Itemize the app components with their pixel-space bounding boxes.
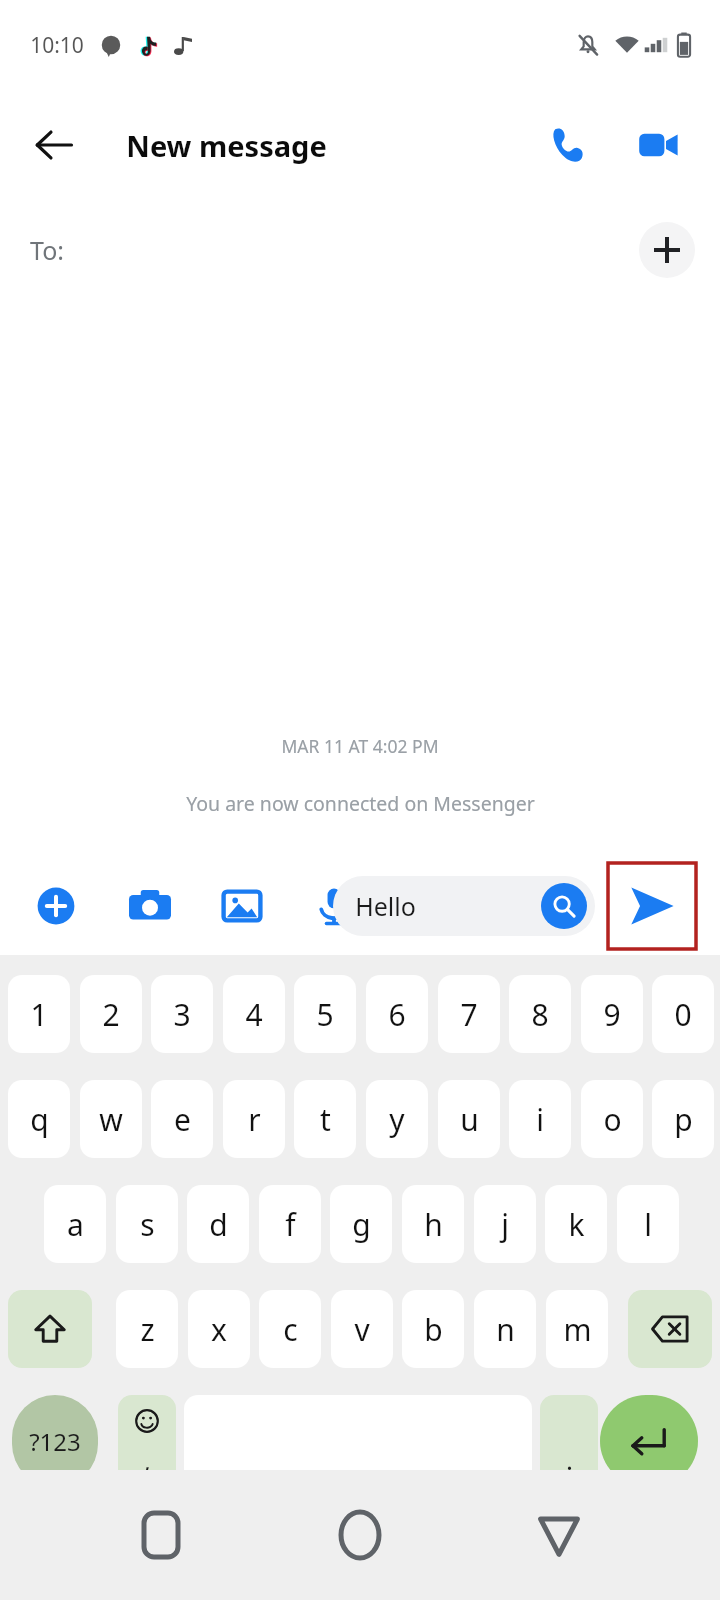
staticText: h [424,1204,443,1245]
button[interactable]: e [151,1080,213,1158]
button[interactable]: n [474,1290,536,1368]
staticText: 0 [674,994,692,1035]
staticText: u [460,1099,479,1140]
button[interactable]: 8 [509,975,571,1053]
button[interactable]: l [617,1185,679,1263]
button[interactable]: 6 [366,975,428,1053]
button[interactable]: o [581,1080,643,1158]
button[interactable]: s [116,1185,178,1263]
button[interactable]: Search [541,883,587,929]
staticText: . [566,1442,573,1477]
staticText: s [140,1204,155,1245]
staticText: 4 [245,994,263,1035]
button[interactable]: y [366,1080,428,1158]
staticText: 8 [531,994,549,1035]
staticText: x [211,1309,227,1350]
staticText: New message [126,126,327,165]
staticText: You are now connected on Messenger [186,790,535,817]
button[interactable]: p [652,1080,714,1158]
button[interactable]: i [509,1080,571,1158]
staticText: 10:10 [30,31,84,60]
staticText: f [285,1204,296,1245]
button[interactable]: 2 [80,975,142,1053]
staticText: 6 [388,994,406,1035]
staticText: ?123 [29,1425,81,1458]
staticText: r [248,1099,261,1140]
button[interactable]: 0 [652,975,714,1053]
staticText: g [352,1204,371,1245]
button[interactable]: m [546,1290,608,1368]
button[interactable]: Hello [333,876,595,936]
button[interactable]: q [8,1080,70,1158]
button[interactable]: Voice [306,878,362,934]
staticText: t [320,1099,331,1140]
staticText: MAR 11 AT 4:02 PM [281,734,439,758]
button[interactable]: 5 [294,975,356,1053]
staticText: y [389,1099,405,1140]
button[interactable]: f [259,1185,321,1263]
staticText: k [568,1204,585,1245]
button[interactable]: z [116,1290,178,1368]
staticText: m [563,1309,592,1350]
staticText: c [283,1309,298,1350]
staticText: v [354,1309,370,1350]
button[interactable]: v [331,1290,393,1368]
staticText: , [144,1444,151,1477]
button[interactable]: Recents [123,1497,199,1573]
staticText: l [644,1204,652,1245]
staticText: Hello [355,889,416,923]
button[interactable]: Enter [600,1395,698,1487]
staticText: b [424,1309,443,1350]
staticText: z [140,1309,155,1350]
staticText: 2 [102,994,120,1035]
button[interactable]: Back [521,1497,597,1573]
button[interactable]: a [44,1185,106,1263]
staticText: 3 [173,994,191,1035]
staticText: w [99,1099,123,1140]
button[interactable]: Home [322,1497,398,1573]
button[interactable]: d [187,1185,249,1263]
button[interactable]: Send [608,863,696,949]
staticText: j [501,1204,509,1245]
button[interactable]: 1 [8,975,70,1053]
staticText: q [30,1099,49,1140]
staticText: o [603,1099,622,1140]
button[interactable]: Camera [122,878,178,934]
button[interactable]: w [80,1080,142,1158]
button[interactable]: 3 [151,975,213,1053]
staticText: i [536,1099,544,1140]
button[interactable]: Backspace [628,1290,712,1368]
button[interactable]: Add [28,878,84,934]
button[interactable]: Add recipient [639,222,695,278]
staticText: n [496,1309,515,1350]
button[interactable]: j [474,1185,536,1263]
button[interactable]: t [294,1080,356,1158]
button[interactable]: k [545,1185,607,1263]
button[interactable]: b [402,1290,464,1368]
button[interactable]: . [540,1395,598,1487]
button[interactable]: Space [184,1395,532,1487]
staticText: a [67,1204,84,1245]
staticText: d [209,1204,228,1245]
staticText: p [674,1099,693,1140]
button[interactable]: Shift [8,1290,92,1368]
button[interactable]: ?123 [12,1395,98,1487]
button[interactable]: g [330,1185,392,1263]
button[interactable]: c [259,1290,321,1368]
staticText: 1 [30,994,48,1035]
button[interactable]: r [223,1080,285,1158]
button[interactable]: 4 [223,975,285,1053]
button[interactable]: Voice call [530,109,602,181]
button[interactable]: u [438,1080,500,1158]
button[interactable]: Gallery [214,878,270,934]
button[interactable]: x [188,1290,250,1368]
button[interactable]: , [118,1395,176,1487]
button[interactable]: h [402,1185,464,1263]
button[interactable]: Video call [622,109,694,181]
button[interactable]: Back [18,109,90,181]
button[interactable]: 7 [438,975,500,1053]
button[interactable]: 9 [581,975,643,1053]
staticText: e [174,1099,191,1140]
staticText: To: [30,233,64,267]
staticText: 7 [460,994,478,1035]
